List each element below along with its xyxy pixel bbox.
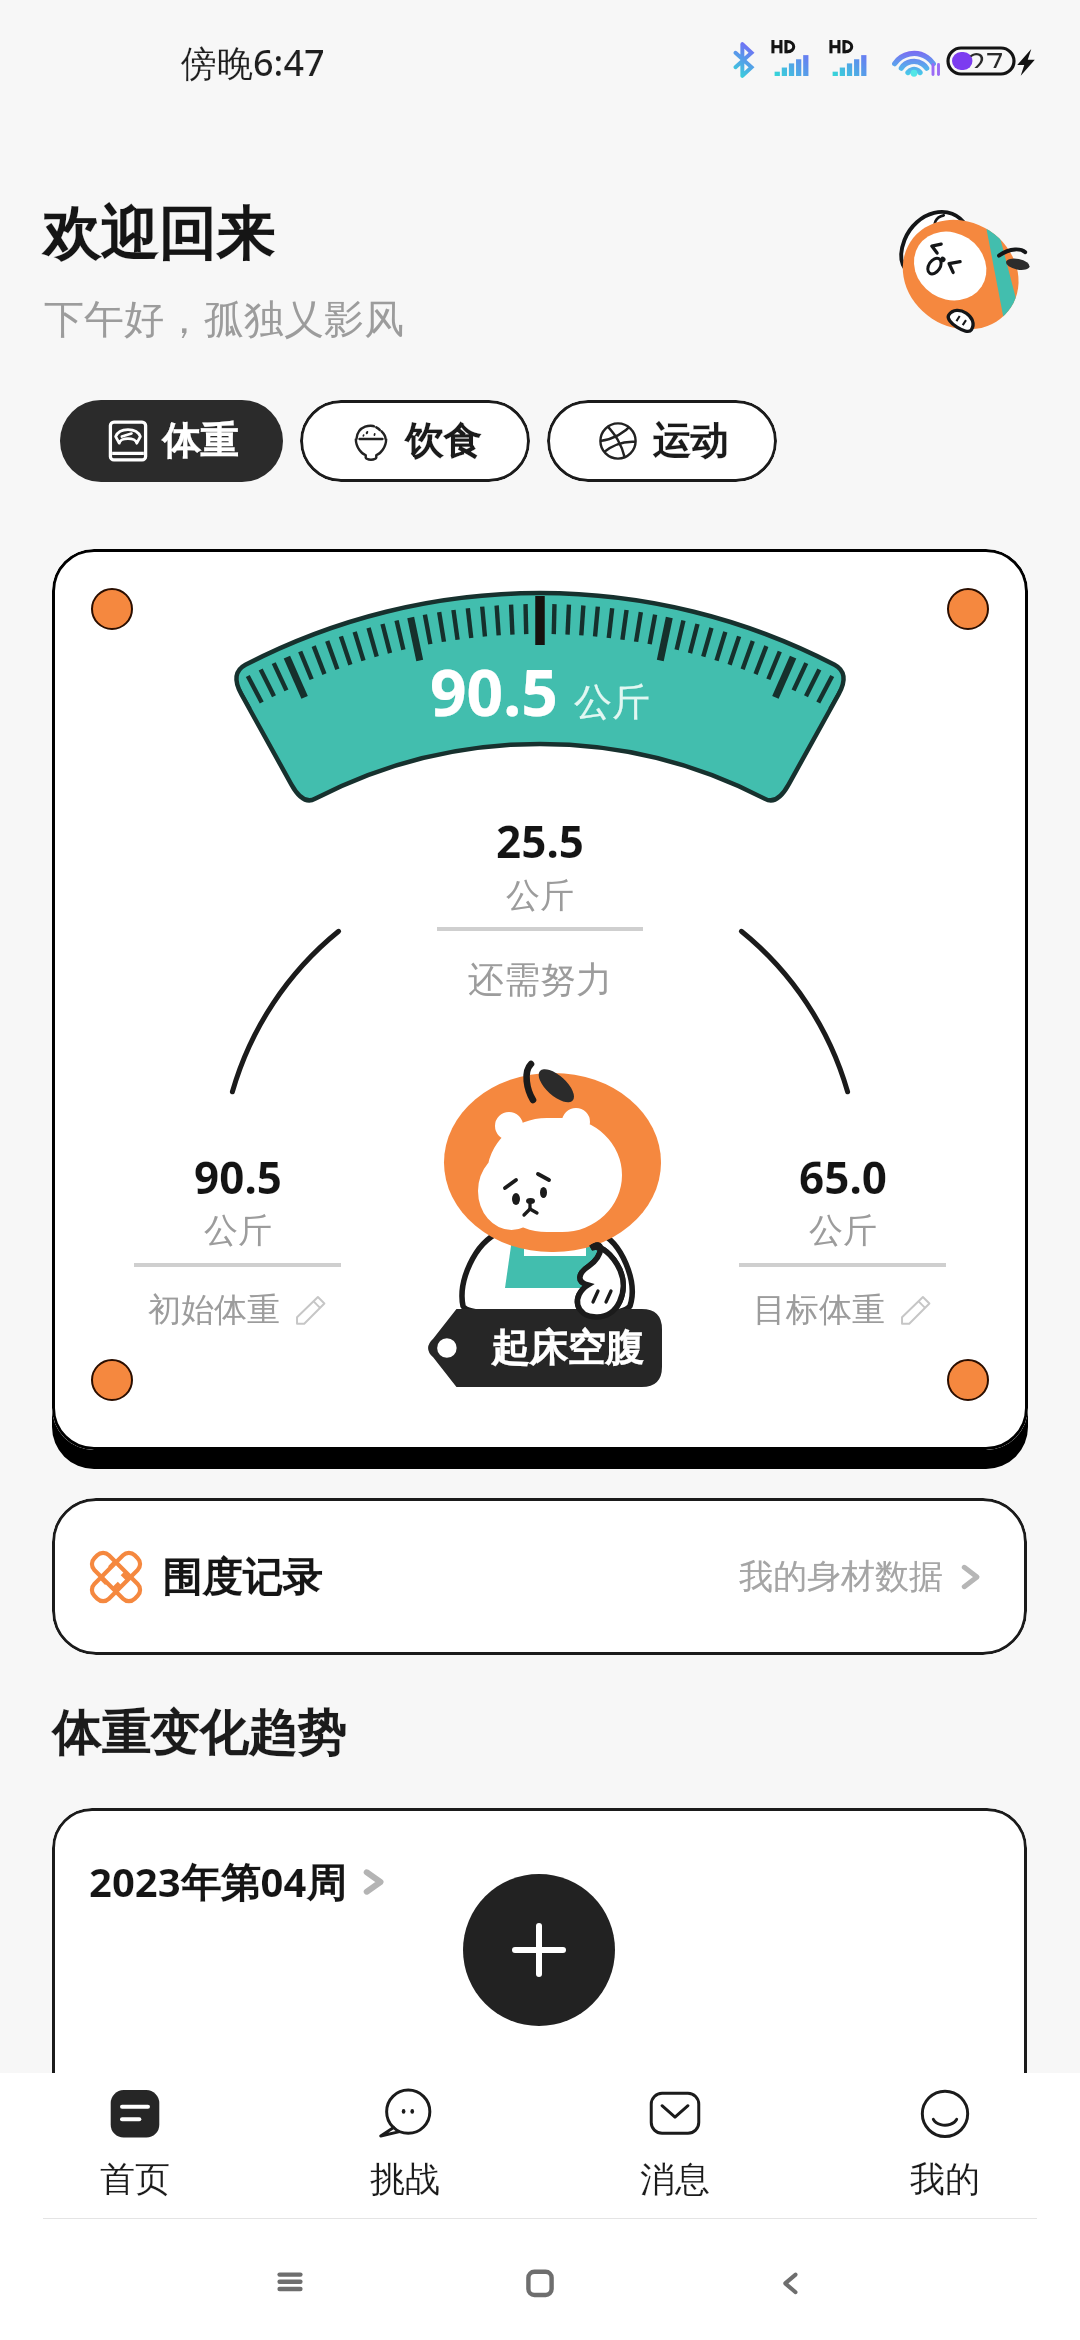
button[interactable]: 体重	[60, 400, 283, 482]
staticText: 25.5	[52, 811, 1028, 871]
staticText: 2023年第04周	[89, 1854, 347, 1909]
staticText: 体重	[162, 417, 238, 465]
button[interactable]: 添加记录	[463, 1874, 615, 2026]
button[interactable]: 主屏幕	[500, 2241, 580, 2321]
staticText: 初始体重	[148, 1289, 280, 1331]
staticText: 还需努力	[52, 957, 1028, 1002]
staticText: 公斤	[52, 874, 1028, 917]
button[interactable]: 2023年第04周	[89, 1854, 387, 1909]
staticText: 傍晚6:47	[181, 38, 325, 87]
staticText: 挑战	[370, 2157, 440, 2201]
staticText: 首页	[100, 2157, 170, 2201]
button[interactable]: 挑战	[270, 2073, 540, 2223]
staticText: 体重变化趋势	[52, 1703, 346, 1765]
button[interactable]: 返回	[750, 2241, 830, 2321]
staticText: 27	[968, 42, 1004, 68]
button[interactable]: 编辑目标体重	[698, 1289, 988, 1331]
staticText: 90.5	[93, 1147, 383, 1207]
staticText: 围度记录	[162, 1552, 322, 1602]
staticText: 公斤	[93, 1209, 383, 1252]
button[interactable]: 最近任务	[250, 2241, 330, 2321]
staticText: 目标体重	[753, 1289, 885, 1331]
staticText: 我的	[910, 2157, 980, 2201]
staticText: 欢迎回来	[42, 198, 274, 271]
button[interactable]: 编辑初始体重	[93, 1289, 383, 1331]
button[interactable]: 我的	[810, 2073, 1080, 2223]
button[interactable]: 消息	[540, 2073, 810, 2223]
button[interactable]: 起床空腹	[423, 1309, 662, 1387]
staticText: 饮食	[405, 417, 481, 465]
staticText: 65.0	[698, 1147, 988, 1207]
button[interactable]: 首页	[0, 2073, 270, 2223]
staticText: 下午好，孤独乂影风	[44, 294, 404, 344]
staticText: 公斤	[574, 678, 650, 726]
staticText: 90.5	[430, 648, 558, 735]
staticText: 消息	[640, 2157, 710, 2201]
button[interactable]: 个人头像	[886, 200, 1036, 350]
staticText: 我的身材数据	[739, 1555, 943, 1598]
staticText: 起床空腹	[491, 1324, 643, 1372]
button[interactable]: 运动	[547, 400, 777, 482]
button[interactable]: 饮食	[300, 400, 530, 482]
staticText: 公斤	[698, 1209, 988, 1252]
staticText: 运动	[652, 417, 728, 465]
button[interactable]: 围度记录	[52, 1498, 1027, 1655]
